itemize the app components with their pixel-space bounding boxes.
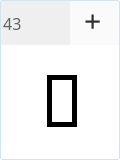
other: Placeholder glyph bbox=[47, 75, 77, 127]
button[interactable]: 43 bbox=[0, 0, 70, 45]
button[interactable]: Add bbox=[70, 0, 120, 45]
staticText: 43 bbox=[3, 13, 22, 35]
